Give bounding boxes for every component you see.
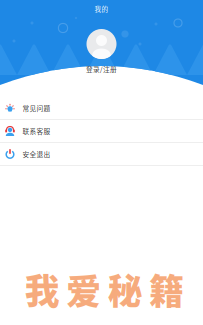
button[interactable]: 登录/注册 [0, 63, 203, 75]
staticText: 安全退出 [22, 149, 50, 159]
button[interactable]: 联系客服 [0, 120, 203, 143]
button[interactable]: 安全退出 [0, 143, 203, 166]
staticText: 联系客服 [22, 126, 50, 136]
staticText: 登录/注册 [86, 64, 117, 74]
staticText: 我爱秘籍 [25, 264, 184, 314]
button[interactable]: 常见问题 [0, 97, 203, 120]
staticText: 我的 [94, 4, 108, 14]
staticText: 常见问题 [22, 103, 50, 113]
